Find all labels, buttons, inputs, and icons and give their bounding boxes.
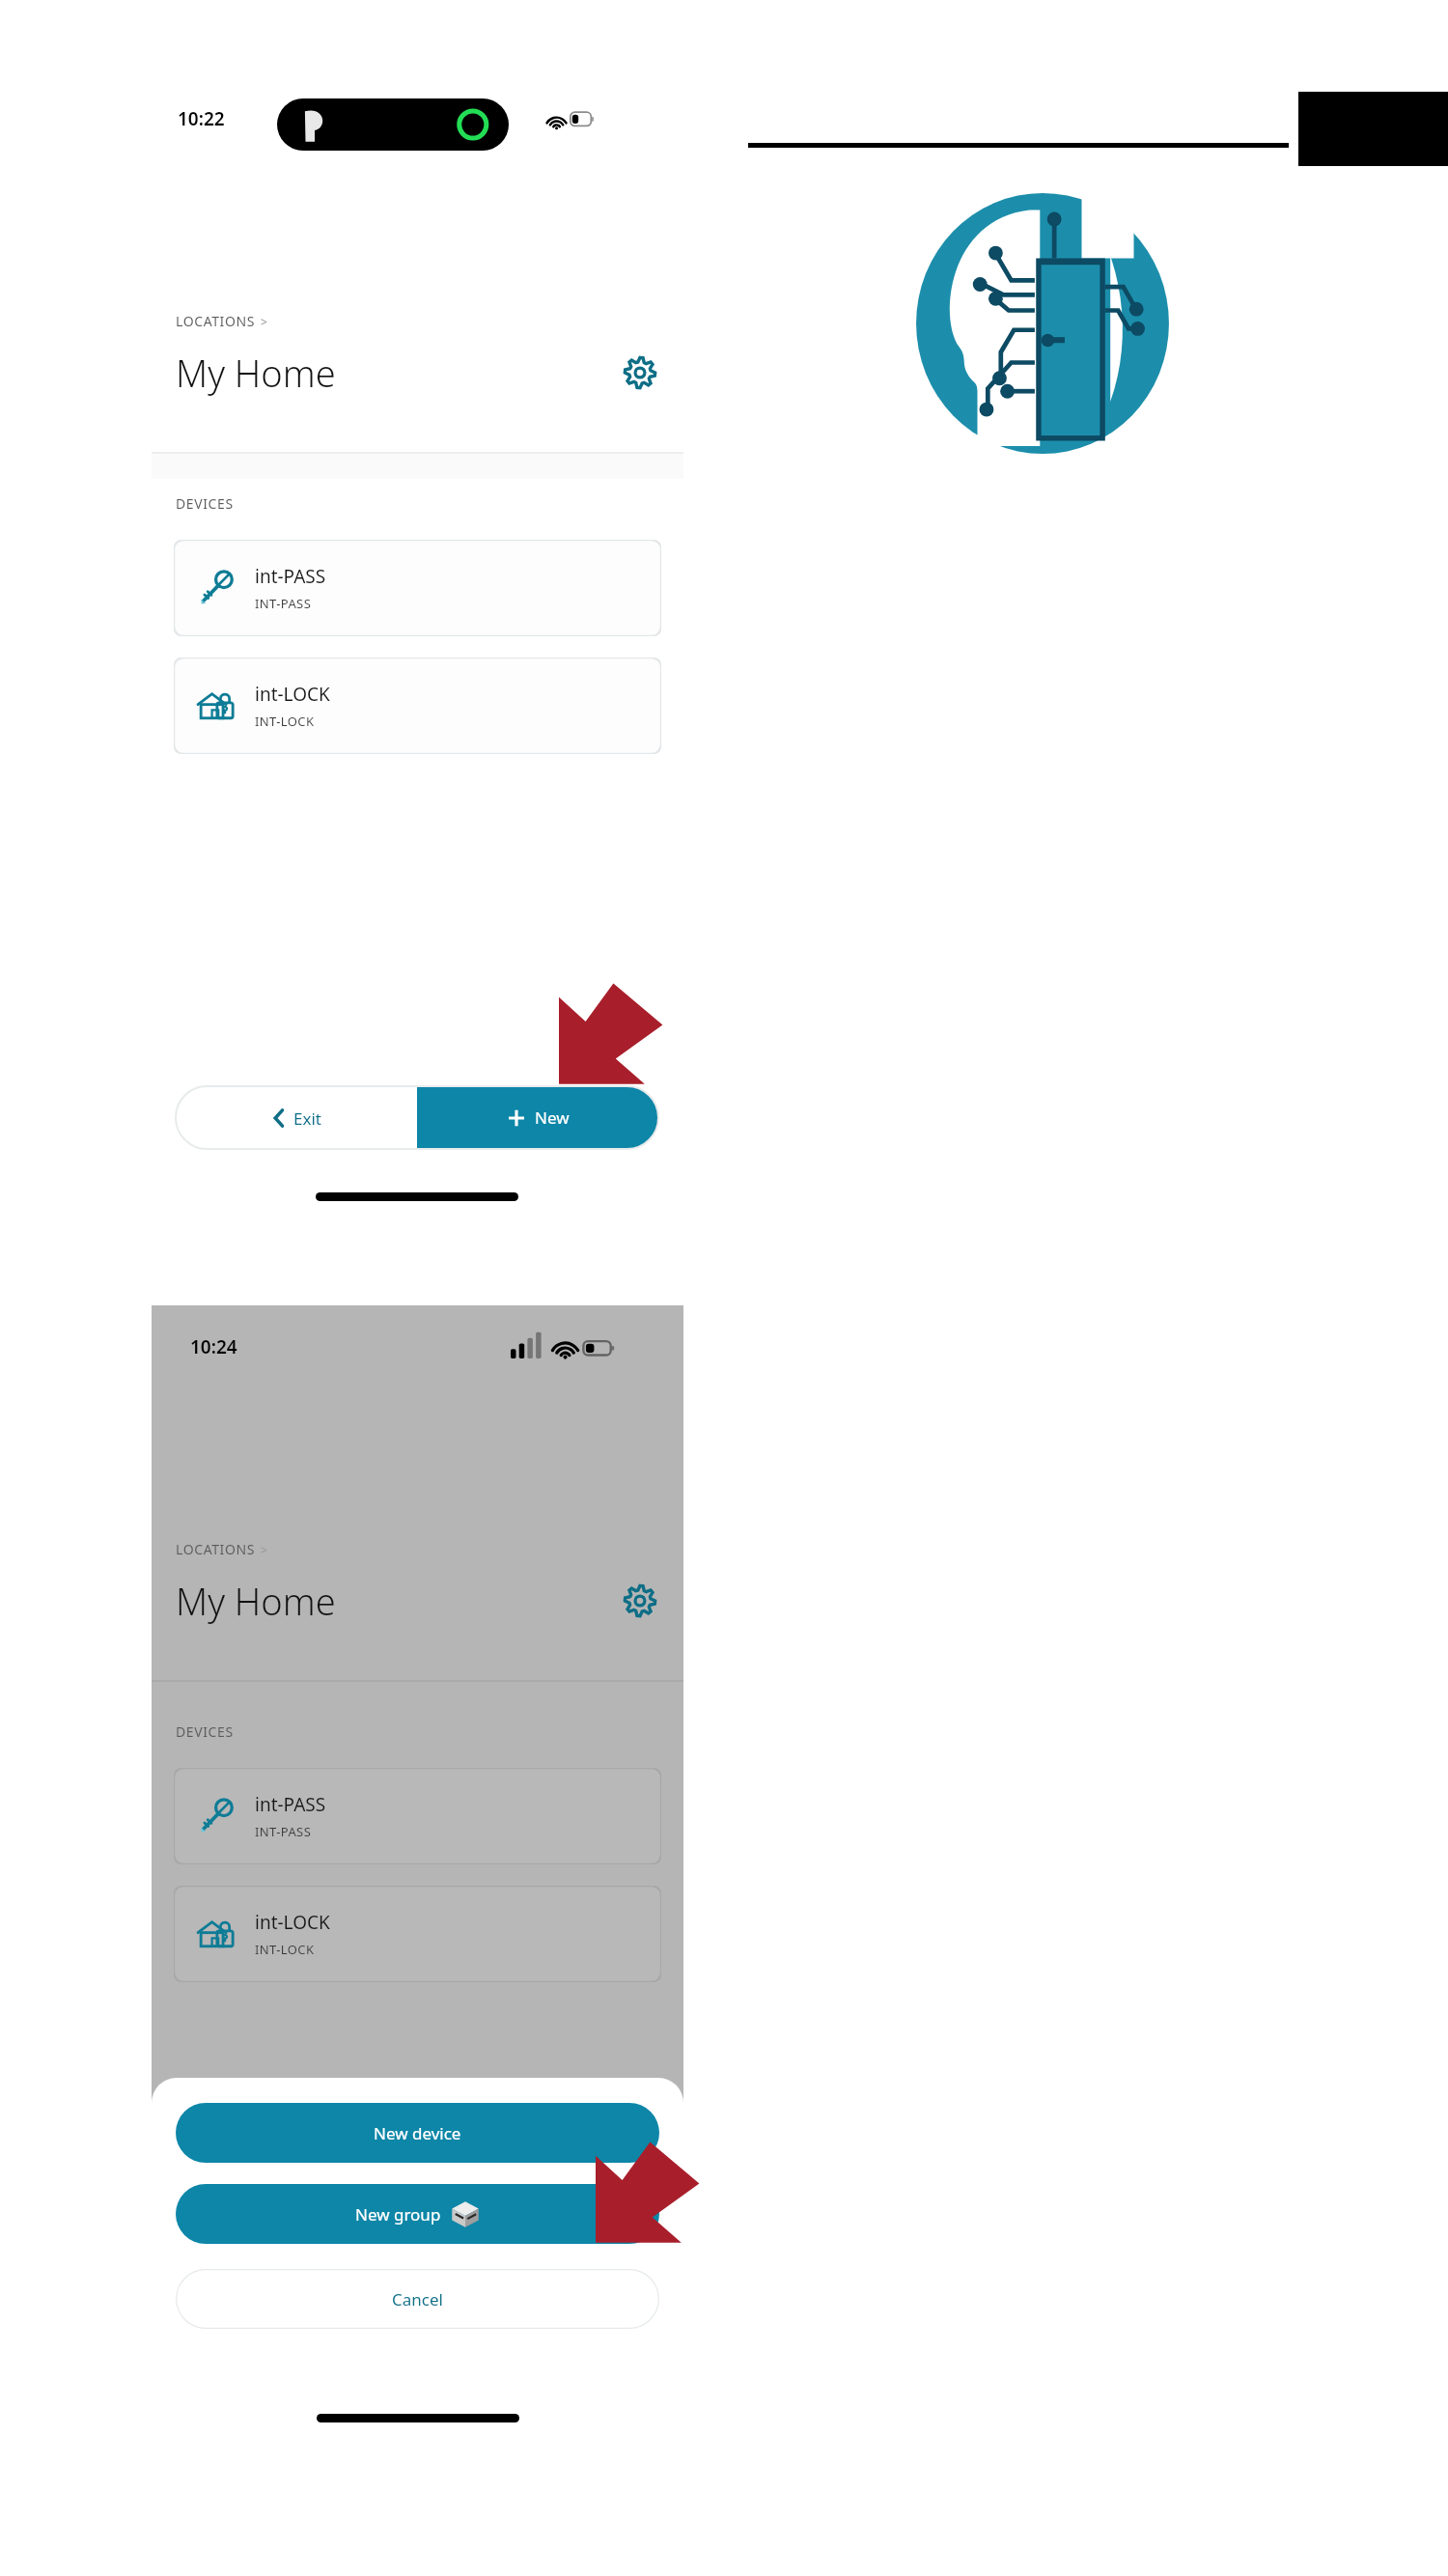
button[interactable]: int-PASS [174, 540, 661, 636]
staticText: Exit [293, 1107, 321, 1130]
staticText: > [261, 314, 267, 329]
staticText: DEVICES [176, 494, 234, 513]
button[interactable]: Cancel [176, 2269, 659, 2329]
button[interactable]: int-PASS [174, 1768, 661, 1864]
staticText: New device [374, 2122, 461, 2144]
staticText: New [535, 1106, 570, 1129]
button[interactable]: New group [176, 2184, 659, 2244]
staticText: int-PASS [255, 1792, 326, 1817]
staticText: LOCATIONS [176, 1540, 255, 1558]
button[interactable]: int-LOCK [174, 658, 661, 754]
button[interactable]: int-LOCK [174, 1886, 661, 1982]
staticText: My Home [176, 1576, 336, 1626]
staticText: INT-PASS [255, 1823, 312, 1840]
staticText: INT-LOCK [255, 1941, 315, 1958]
staticText: INT-LOCK [255, 713, 315, 730]
button[interactable]: New device [176, 2103, 659, 2163]
button[interactable]: Settings [624, 356, 656, 389]
staticText: 10:22 [178, 106, 225, 131]
staticText: int-LOCK [255, 682, 330, 707]
staticText: New group [355, 2203, 441, 2226]
button[interactable]: New [417, 1086, 658, 1149]
staticText: 10:24 [190, 1334, 237, 1359]
button[interactable]: Settings [624, 1584, 656, 1617]
staticText: DEVICES [176, 1722, 234, 1741]
staticText: LOCATIONS [176, 312, 255, 330]
staticText: > [261, 1542, 267, 1557]
staticText: int-PASS [255, 564, 326, 589]
button[interactable]: Exit [176, 1086, 417, 1149]
staticText: int-LOCK [255, 1910, 330, 1935]
staticText: Cancel [392, 2288, 443, 2310]
staticText: INT-PASS [255, 595, 312, 612]
staticText: My Home [176, 348, 336, 398]
